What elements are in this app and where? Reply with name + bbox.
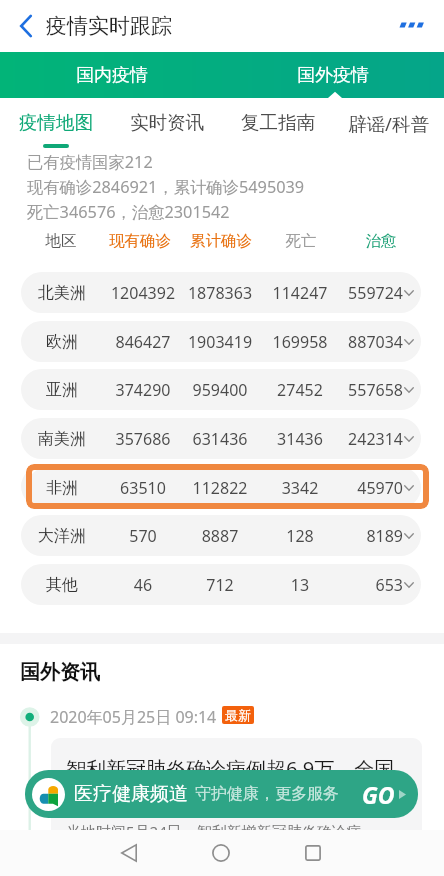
staticText: 地区	[1, 231, 121, 251]
button[interactable]	[0, 52, 222, 98]
staticText: 1204392	[83, 282, 203, 304]
button[interactable]: 北美洲	[21, 272, 421, 313]
staticText: 3342	[240, 477, 360, 499]
staticText: 63510	[83, 477, 203, 499]
button[interactable]: 大洋洲	[21, 515, 421, 556]
button[interactable]: 复工指南	[222, 98, 333, 150]
button[interactable]: 亚洲	[21, 369, 421, 410]
staticText: 治愈	[321, 231, 441, 251]
staticText: 欧洲	[21, 332, 122, 352]
staticText: 智利新冠肺炎确诊病例超6.9万，全国 进入紧急状态	[66, 755, 395, 812]
button[interactable]	[222, 52, 444, 98]
button[interactable]: 智利新冠肺炎确诊病例超6.9万，全国 进入紧急状态	[51, 738, 422, 876]
button[interactable]: More options	[396, 0, 444, 52]
staticText: 2020年05月25日 09:14	[50, 706, 217, 728]
staticText: 疫情地图	[19, 111, 93, 134]
staticText: 非洲	[26, 478, 122, 498]
staticText: 累计确诊	[161, 231, 281, 251]
staticText: 疫情实时跟踪	[46, 13, 172, 39]
staticText: 国内疫情	[76, 64, 148, 87]
staticText: 亚洲	[21, 380, 122, 400]
staticText: 557658	[283, 379, 403, 401]
staticText: 国外疫情	[297, 64, 369, 87]
staticText: 13	[240, 574, 360, 596]
staticText: 已有疫情国家212	[27, 151, 153, 173]
staticText: 其他	[21, 575, 122, 595]
staticText: 653	[283, 574, 403, 596]
button[interactable]: Back	[105, 830, 153, 876]
staticText: 846427	[83, 331, 203, 353]
staticText: 114247	[240, 282, 360, 304]
staticText: 南美洲	[21, 429, 122, 449]
staticText: 45970	[283, 477, 403, 499]
staticText: 北美洲	[21, 283, 122, 303]
staticText: 1878363	[160, 282, 280, 304]
staticText: GO	[362, 779, 395, 810]
button[interactable]: 南美洲	[21, 418, 421, 459]
staticText: 712	[160, 574, 280, 596]
button[interactable]: 实时资讯	[111, 98, 222, 150]
staticText: 8887	[160, 525, 280, 547]
button[interactable]: Home	[197, 830, 245, 876]
staticText: 169958	[240, 331, 360, 353]
staticText: 374290	[83, 379, 203, 401]
button[interactable]: Recent apps	[289, 830, 337, 876]
staticText: 辟谣/科普	[348, 111, 429, 136]
button[interactable]: 非洲	[26, 464, 429, 509]
button[interactable]: 辟谣/科普	[333, 98, 444, 150]
staticText: 570	[83, 525, 203, 547]
staticText: 实时资讯	[130, 111, 204, 134]
staticText: 1903419	[160, 331, 280, 353]
button[interactable]: Back	[4, 0, 48, 52]
staticText: 8189	[283, 525, 403, 547]
button[interactable]	[21, 466, 421, 507]
staticText: 守护健康，更多服务	[195, 784, 339, 804]
staticText: 46	[83, 574, 203, 596]
staticText: 复工指南	[241, 111, 315, 134]
staticText: 大洋洲	[21, 526, 122, 546]
staticText: 死亡	[241, 231, 361, 251]
button[interactable]: 医疗健康频道	[25, 770, 418, 818]
staticText: 当地时间5月24日，智利新增新冠肺炎确诊病	[66, 821, 362, 841]
staticText: 887034	[283, 331, 403, 353]
staticText: 959400	[160, 379, 280, 401]
staticText: 631436	[160, 428, 280, 450]
staticText: 357686	[83, 428, 203, 450]
staticText: 死亡346576，治愈2301542	[27, 201, 230, 223]
button[interactable]: 欧洲	[21, 321, 421, 362]
staticText: 128	[240, 525, 360, 547]
button[interactable]: 其他	[21, 564, 421, 605]
button[interactable]: 疫情地图	[0, 98, 111, 150]
staticText: 27452	[240, 379, 360, 401]
staticText: 112822	[160, 477, 280, 499]
staticText: 31436	[240, 428, 360, 450]
staticText: 242314	[283, 428, 403, 450]
staticText: 现有确诊	[80, 231, 200, 251]
staticText: 国外资讯	[20, 660, 100, 685]
staticText: 医疗健康频道	[74, 782, 188, 806]
staticText: 最新	[225, 707, 251, 723]
staticText: 现有确诊2846921，累计确诊5495039	[27, 176, 305, 198]
staticText: 559724	[283, 282, 403, 304]
